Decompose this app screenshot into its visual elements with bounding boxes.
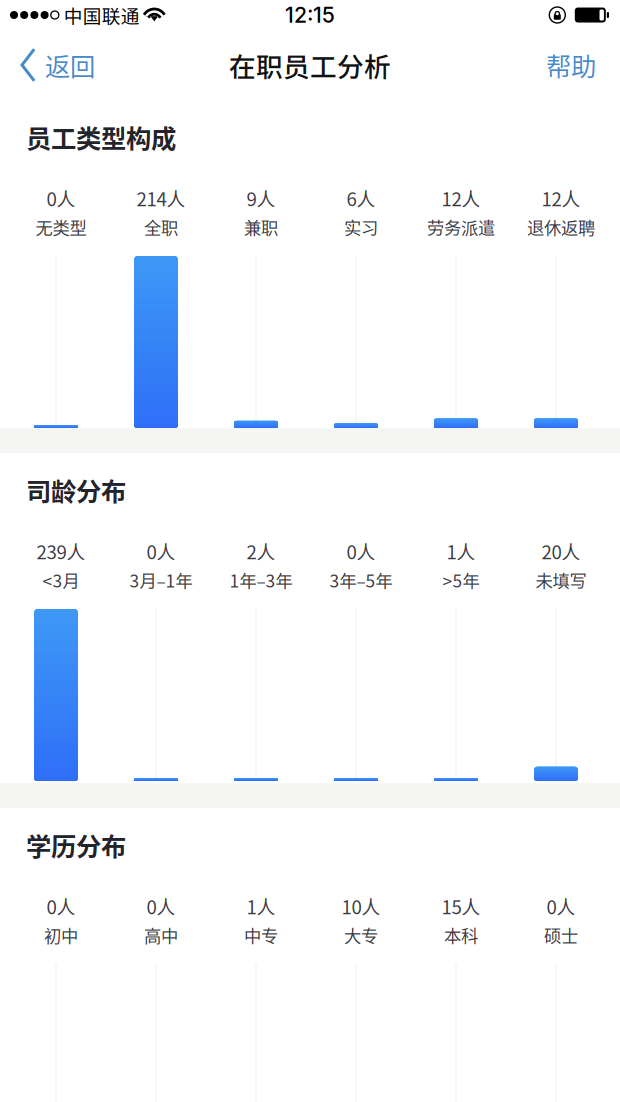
button[interactable]: 帮助	[526, 30, 620, 100]
staticText: 兼职	[244, 214, 278, 240]
staticText: 3年–5年	[329, 567, 392, 593]
staticText: <3月	[42, 567, 79, 593]
staticText: 2人	[246, 537, 275, 564]
staticText: 帮助	[546, 47, 596, 83]
staticText: 高中	[144, 922, 178, 948]
staticText: 中国联通	[64, 1, 140, 28]
staticText: 0人	[146, 537, 175, 564]
staticText: 初中	[44, 922, 78, 948]
staticText: 退休返聘	[527, 214, 595, 240]
staticText: 未填写	[535, 567, 586, 593]
staticText: 20人	[541, 537, 580, 564]
staticText: 6人	[346, 184, 375, 211]
staticText: 12人	[541, 184, 580, 211]
button[interactable]: 返回	[0, 30, 109, 100]
staticText: 0人	[46, 892, 75, 919]
staticText: 1人	[446, 537, 475, 564]
staticText: 返回	[45, 47, 95, 83]
staticText: 中专	[244, 922, 278, 948]
staticText: 劳务派遣	[427, 214, 495, 240]
staticText: 硕士	[544, 922, 578, 948]
staticText: 3月–1年	[129, 567, 192, 593]
staticText: 在职员工分析	[229, 46, 391, 84]
staticText: 0人	[46, 184, 75, 211]
staticText: 司龄分布	[26, 472, 126, 508]
staticText: 0人	[546, 892, 575, 919]
staticText: 10人	[341, 892, 380, 919]
staticText: 本科	[444, 922, 478, 948]
staticText: 1人	[246, 892, 275, 919]
staticText: 214人	[136, 184, 185, 211]
staticText: 15人	[441, 892, 480, 919]
staticText: 大专	[344, 922, 378, 948]
staticText: >5年	[442, 567, 479, 593]
staticText: 239人	[36, 537, 85, 564]
staticText: 实习	[344, 214, 378, 240]
staticText: 1年–3年	[229, 567, 292, 593]
staticText: 员工类型构成	[26, 119, 176, 155]
staticText: 12人	[441, 184, 480, 211]
staticText: 9人	[246, 184, 275, 211]
staticText: 无类型	[35, 214, 86, 240]
staticText: 学历分布	[26, 827, 126, 863]
staticText: 0人	[346, 537, 375, 564]
staticText: 0人	[146, 892, 175, 919]
staticText: 全职	[144, 214, 178, 240]
staticText: 12:15	[285, 2, 335, 28]
